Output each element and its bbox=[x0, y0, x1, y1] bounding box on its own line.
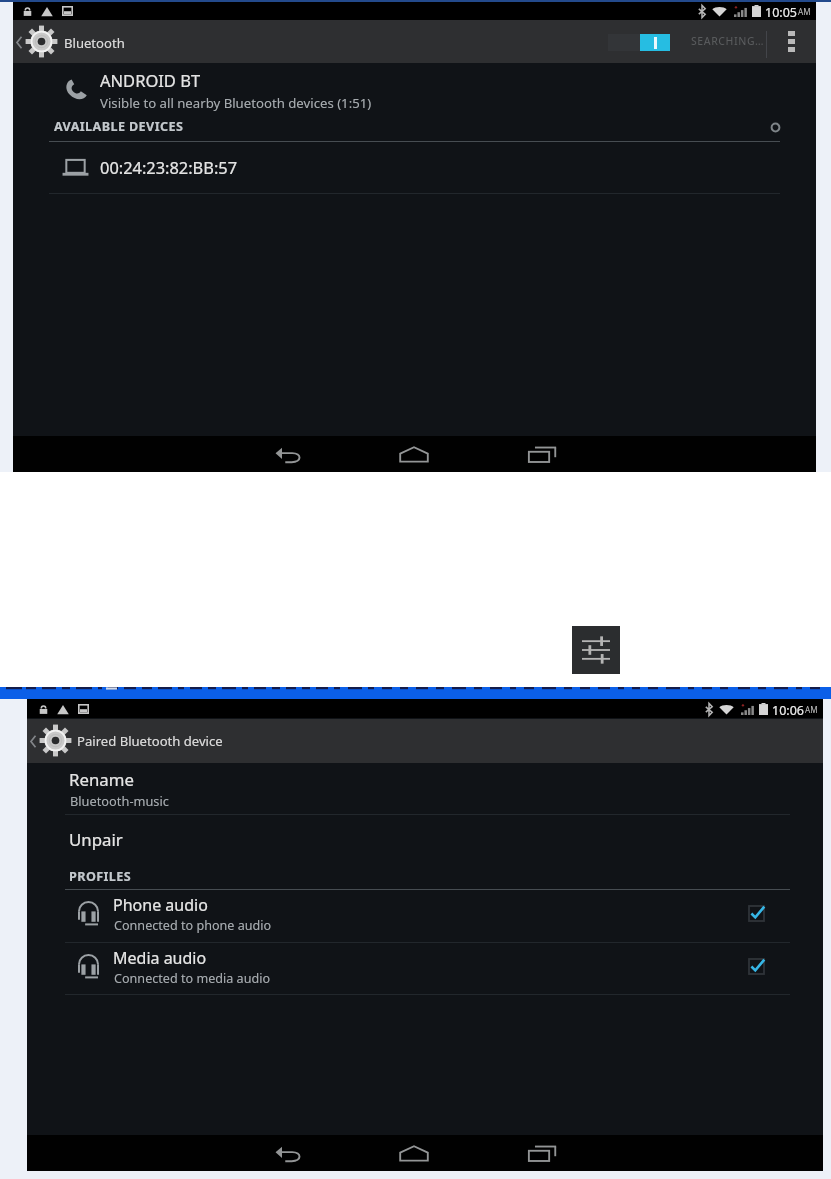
button[interactable] bbox=[13, 143, 816, 189]
button[interactable]: Recents bbox=[518, 1135, 566, 1171]
staticText: AM bbox=[798, 6, 811, 17]
staticText: Paired Bluetooth device bbox=[77, 732, 223, 750]
button[interactable] bbox=[27, 763, 823, 814]
button[interactable]: More options bbox=[771, 20, 811, 63]
staticText: Connected to media audio bbox=[114, 970, 271, 987]
staticText: AM bbox=[805, 704, 818, 715]
staticText: SEARCHING… bbox=[691, 34, 765, 48]
button[interactable] bbox=[13, 63, 816, 111]
staticText: PROFILES bbox=[69, 868, 132, 885]
button[interactable]: Home bbox=[390, 436, 438, 472]
button[interactable]: Home bbox=[390, 1135, 438, 1171]
button[interactable]: Back bbox=[264, 436, 312, 472]
button[interactable]: Bluetooth on bbox=[602, 26, 680, 59]
staticText: Connected to phone audio bbox=[114, 917, 272, 934]
button[interactable]: Navigate up bbox=[13, 20, 61, 63]
button[interactable]: Settings bbox=[572, 626, 620, 674]
staticText: Bluetooth bbox=[64, 34, 125, 52]
button[interactable]: Back bbox=[264, 1135, 312, 1171]
staticText: Rename bbox=[69, 768, 134, 791]
button[interactable] bbox=[27, 815, 823, 861]
button[interactable]: Phone audio bbox=[27, 890, 823, 940]
staticText: Bluetooth-music bbox=[70, 792, 169, 809]
staticText: 10:05 bbox=[765, 4, 797, 21]
button[interactable]: Media audio bbox=[27, 943, 823, 993]
button[interactable]: Recents bbox=[518, 436, 566, 472]
button[interactable]: Navigate up bbox=[27, 719, 75, 763]
staticText: Phone audio bbox=[113, 894, 208, 916]
staticText: 10:06 bbox=[772, 702, 804, 719]
staticText: Media audio bbox=[113, 947, 207, 969]
staticText: Unpair bbox=[69, 828, 123, 851]
staticText: ANDROID BT bbox=[100, 69, 201, 91]
staticText: AVAILABLE DEVICES bbox=[54, 118, 184, 135]
staticText: Visible to all nearby Bluetooth devices … bbox=[100, 94, 372, 112]
staticText: 00:24:23:82:BB:57 bbox=[100, 156, 238, 178]
